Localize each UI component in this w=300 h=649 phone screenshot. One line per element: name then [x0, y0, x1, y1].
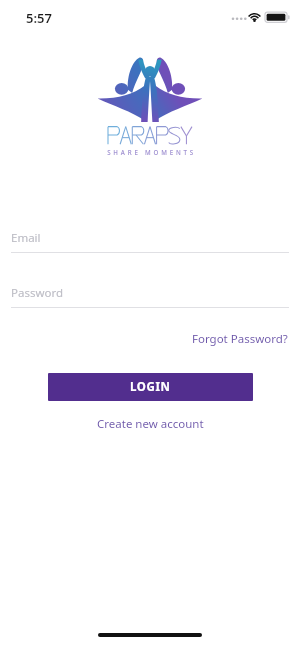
button[interactable]: Forgot Password?: [180, 326, 300, 352]
staticText: Forgot Password?: [192, 331, 288, 347]
button[interactable]: Create new account: [83, 412, 218, 436]
staticText: S H A R E M O M E N T S: [107, 148, 194, 156]
staticText: Email: [11, 230, 41, 246]
button[interactable]: Password: [0, 285, 300, 308]
button[interactable]: LOGIN: [48, 373, 253, 401]
staticText: 5:57: [26, 9, 52, 27]
staticText: LOGIN: [130, 379, 171, 395]
staticText: Password: [11, 285, 64, 301]
staticText: Create new account: [97, 416, 204, 432]
button[interactable]: Email: [0, 230, 300, 253]
